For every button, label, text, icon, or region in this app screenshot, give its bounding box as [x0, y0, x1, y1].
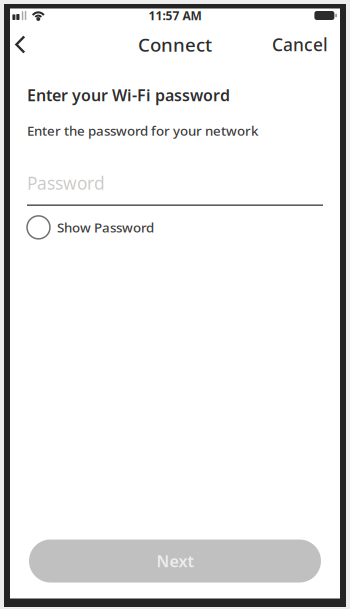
- staticText: Enter the password for your network: [27, 122, 258, 139]
- staticText: Next: [156, 550, 193, 572]
- staticText: Password: [27, 171, 105, 194]
- staticText: Cancel: [272, 33, 328, 56]
- staticText: Show Password: [57, 218, 154, 236]
- staticText: Connect: [138, 32, 212, 57]
- staticText: 11:57 AM: [148, 7, 201, 23]
- staticText: Enter your Wi-Fi password: [27, 84, 230, 106]
- button[interactable]: Back: [10, 29, 47, 59]
- button[interactable]: Next: [29, 539, 321, 582]
- button[interactable]: Cancel: [272, 29, 340, 59]
- button[interactable]: Show Password: [27, 216, 323, 239]
